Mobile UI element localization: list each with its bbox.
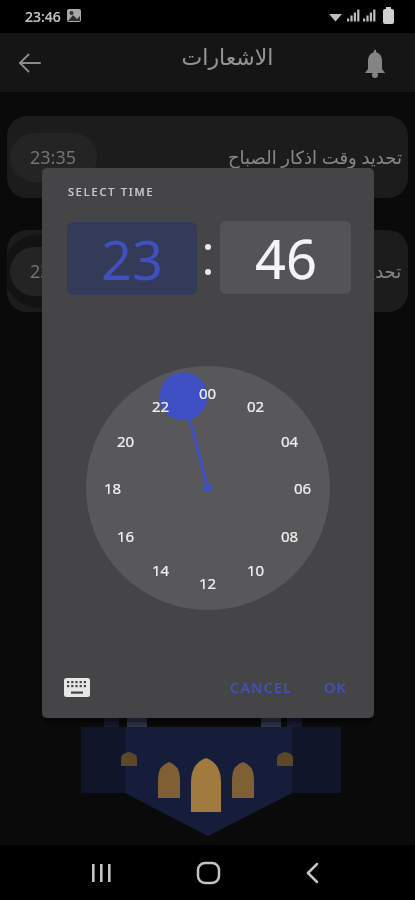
button[interactable] [10, 43, 50, 83]
staticText: 02 [247, 396, 265, 416]
staticText: 23:35 [30, 145, 77, 170]
button[interactable] [84, 855, 120, 891]
staticText: 20 [117, 431, 135, 451]
button[interactable]: CANCEL [222, 672, 300, 702]
staticText: 16 [117, 526, 135, 546]
staticText: 04 [281, 431, 299, 451]
staticText: 00 [199, 383, 217, 403]
staticText: تحديد وقت اذكار المساء [225, 259, 402, 284]
button[interactable]: 46 [220, 221, 351, 294]
staticText: SELECT TIME [68, 184, 155, 199]
button[interactable]: 23:45 [7, 230, 408, 312]
staticText: 23:45 [30, 259, 77, 284]
staticText: 10 [247, 560, 265, 580]
button[interactable] [355, 45, 395, 85]
staticText: تحديد وقت اذكار الصباح [228, 145, 402, 170]
button[interactable]: 23:35 [7, 116, 408, 198]
button[interactable]: OK [312, 672, 358, 702]
staticText: 23:46 [25, 7, 61, 26]
staticText: 08 [281, 526, 299, 546]
staticText: 46 [255, 221, 317, 294]
button[interactable]: 23 [67, 222, 197, 295]
staticText: CANCEL [230, 677, 293, 697]
staticText: 18 [104, 478, 122, 498]
staticText: 23 [101, 222, 163, 295]
button[interactable] [295, 855, 331, 891]
staticText: 14 [152, 560, 170, 580]
staticText: 12 [199, 573, 217, 593]
staticText: OK [324, 677, 347, 697]
staticText: 22 [152, 396, 170, 416]
staticText: الاشعارات [150, 45, 305, 71]
button[interactable] [56, 668, 100, 704]
staticText: 06 [294, 478, 312, 498]
button[interactable] [191, 855, 227, 891]
